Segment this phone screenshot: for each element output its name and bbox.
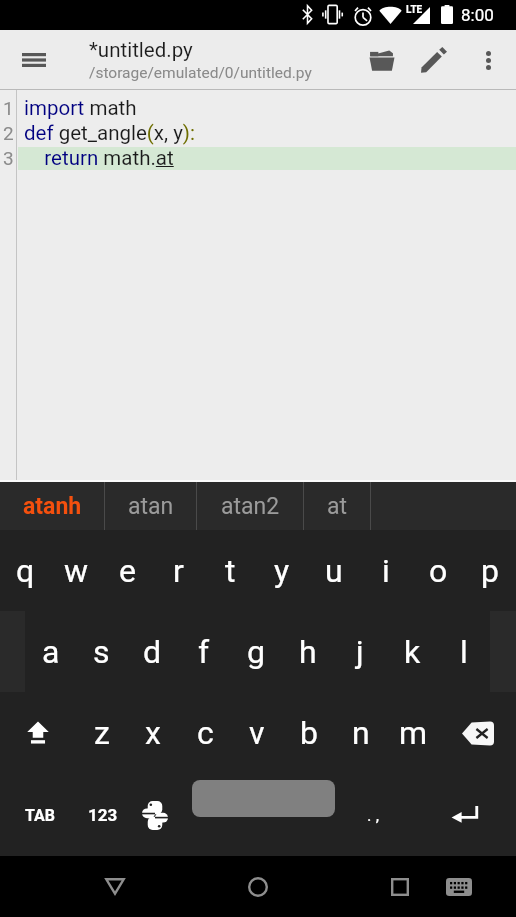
staticText: atan2	[221, 493, 280, 520]
button[interactable]: 123	[79, 774, 127, 856]
staticText: 3	[3, 147, 14, 169]
button[interactable]: a	[25, 611, 76, 692]
button[interactable]: b	[283, 692, 335, 774]
staticText: v	[249, 714, 265, 752]
staticText: a	[42, 633, 60, 671]
staticText: h	[299, 633, 317, 671]
staticText: y	[274, 552, 290, 590]
button[interactable]: c	[179, 692, 231, 774]
button[interactable]: atanh	[0, 482, 104, 530]
button[interactable]: Home	[218, 856, 298, 917]
button[interactable]: z	[76, 692, 127, 774]
button[interactable]: TAB	[0, 774, 79, 856]
staticText: def get_angle(x, y):	[24, 121, 195, 145]
staticText: TAB	[25, 806, 55, 825]
staticText: b	[300, 714, 318, 752]
staticText: z	[94, 714, 110, 752]
button[interactable]: Space	[183, 774, 343, 856]
staticText: u	[325, 552, 343, 590]
button[interactable]: n	[335, 692, 387, 774]
staticText: i	[382, 552, 390, 590]
staticText: import math	[24, 96, 137, 120]
staticText: p	[481, 552, 499, 590]
staticText: g	[247, 633, 265, 671]
button[interactable]: More options	[460, 30, 516, 90]
staticText: f	[198, 633, 210, 671]
button[interactable]: d	[127, 611, 178, 692]
button[interactable]: Shift	[0, 692, 76, 774]
staticText: t	[225, 552, 236, 590]
staticText: 123	[88, 805, 118, 825]
staticText: at	[327, 493, 348, 520]
button[interactable]: t	[204, 530, 256, 611]
button[interactable]: . ,	[343, 774, 404, 856]
staticText: atan	[128, 493, 174, 520]
button[interactable]: atan	[105, 482, 196, 530]
staticText: LTE	[406, 4, 423, 16]
staticText: j	[356, 633, 364, 671]
button[interactable]: j	[334, 611, 386, 692]
staticText: w	[64, 552, 89, 590]
button[interactable]: Menu	[6, 30, 62, 90]
staticText: s	[93, 633, 110, 671]
staticText: o	[429, 552, 448, 590]
button[interactable]: at	[304, 482, 370, 530]
button[interactable]: e	[102, 530, 153, 611]
button[interactable]: f	[178, 611, 230, 692]
staticText: l	[460, 633, 468, 671]
staticText: /storage/emulated/0/untitled.py	[89, 64, 312, 82]
button[interactable]: q	[0, 530, 51, 611]
button[interactable]: Open file	[356, 30, 408, 90]
staticText: r	[173, 552, 184, 590]
staticText: k	[404, 633, 421, 671]
button[interactable]: Back	[75, 856, 155, 917]
button[interactable]: atan2	[197, 482, 303, 530]
staticText: d	[143, 633, 162, 671]
button[interactable]: l	[438, 611, 490, 692]
staticText: q	[16, 552, 35, 590]
staticText: atanh	[23, 493, 82, 520]
staticText: *untitled.py	[89, 38, 193, 62]
button[interactable]: s	[76, 611, 127, 692]
button[interactable]: o	[412, 530, 464, 611]
button[interactable]: k	[386, 611, 438, 692]
button[interactable]: i	[360, 530, 412, 611]
staticText: 2	[3, 122, 14, 144]
staticText: n	[352, 714, 370, 752]
button[interactable]: Switch keyboard	[434, 856, 483, 917]
button[interactable]: Backspace	[439, 692, 516, 774]
staticText: e	[119, 552, 136, 590]
button[interactable]: r	[153, 530, 204, 611]
button[interactable]: w	[51, 530, 102, 611]
staticText: c	[197, 714, 214, 752]
button[interactable]: Enter	[404, 774, 516, 856]
staticText: 1	[3, 97, 14, 119]
button[interactable]: h	[282, 611, 334, 692]
button[interactable]: p	[464, 530, 516, 611]
staticText: . ,	[367, 805, 380, 825]
staticText: m	[399, 714, 428, 752]
button[interactable]: Edit	[408, 30, 460, 90]
button[interactable]: m	[387, 692, 439, 774]
button[interactable]: y	[256, 530, 308, 611]
button[interactable]: x	[127, 692, 179, 774]
staticText: 8:00	[461, 5, 494, 25]
button[interactable]: g	[230, 611, 282, 692]
staticText: return math.at	[24, 146, 174, 170]
button[interactable]: Recent apps	[360, 856, 440, 917]
button[interactable]: v	[231, 692, 283, 774]
staticText: x	[145, 714, 161, 752]
button[interactable]: u	[308, 530, 360, 611]
button[interactable]: Python symbols	[127, 774, 183, 856]
